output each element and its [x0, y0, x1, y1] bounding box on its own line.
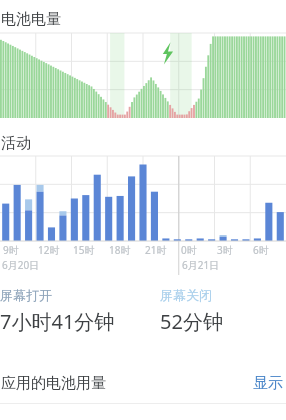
staticText: 15时: [73, 243, 95, 257]
staticText: 6月20日: [2, 258, 40, 272]
staticText: 52分钟: [160, 308, 223, 335]
staticText: 活动: [1, 134, 31, 153]
staticText: 7小时41分钟: [0, 308, 115, 335]
staticText: 21时: [145, 243, 167, 257]
button[interactable]: 显示: [250, 374, 286, 393]
staticText: 12时: [38, 243, 60, 257]
staticText: 6月21日: [182, 258, 220, 272]
staticText: 应用的电池用量: [1, 374, 106, 393]
staticText: 屏幕关闭: [160, 287, 212, 303]
staticText: 6时: [253, 243, 269, 257]
staticText: 电池电量: [1, 10, 61, 29]
staticText: 9时: [3, 243, 19, 257]
staticText: 屏幕打开: [0, 287, 52, 303]
button[interactable]: 应用的电池用量: [0, 363, 286, 403]
staticText: 3时: [217, 243, 233, 257]
staticText: 显示: [253, 374, 283, 393]
staticText: 18时: [109, 243, 131, 257]
staticText: 0时: [181, 243, 197, 257]
